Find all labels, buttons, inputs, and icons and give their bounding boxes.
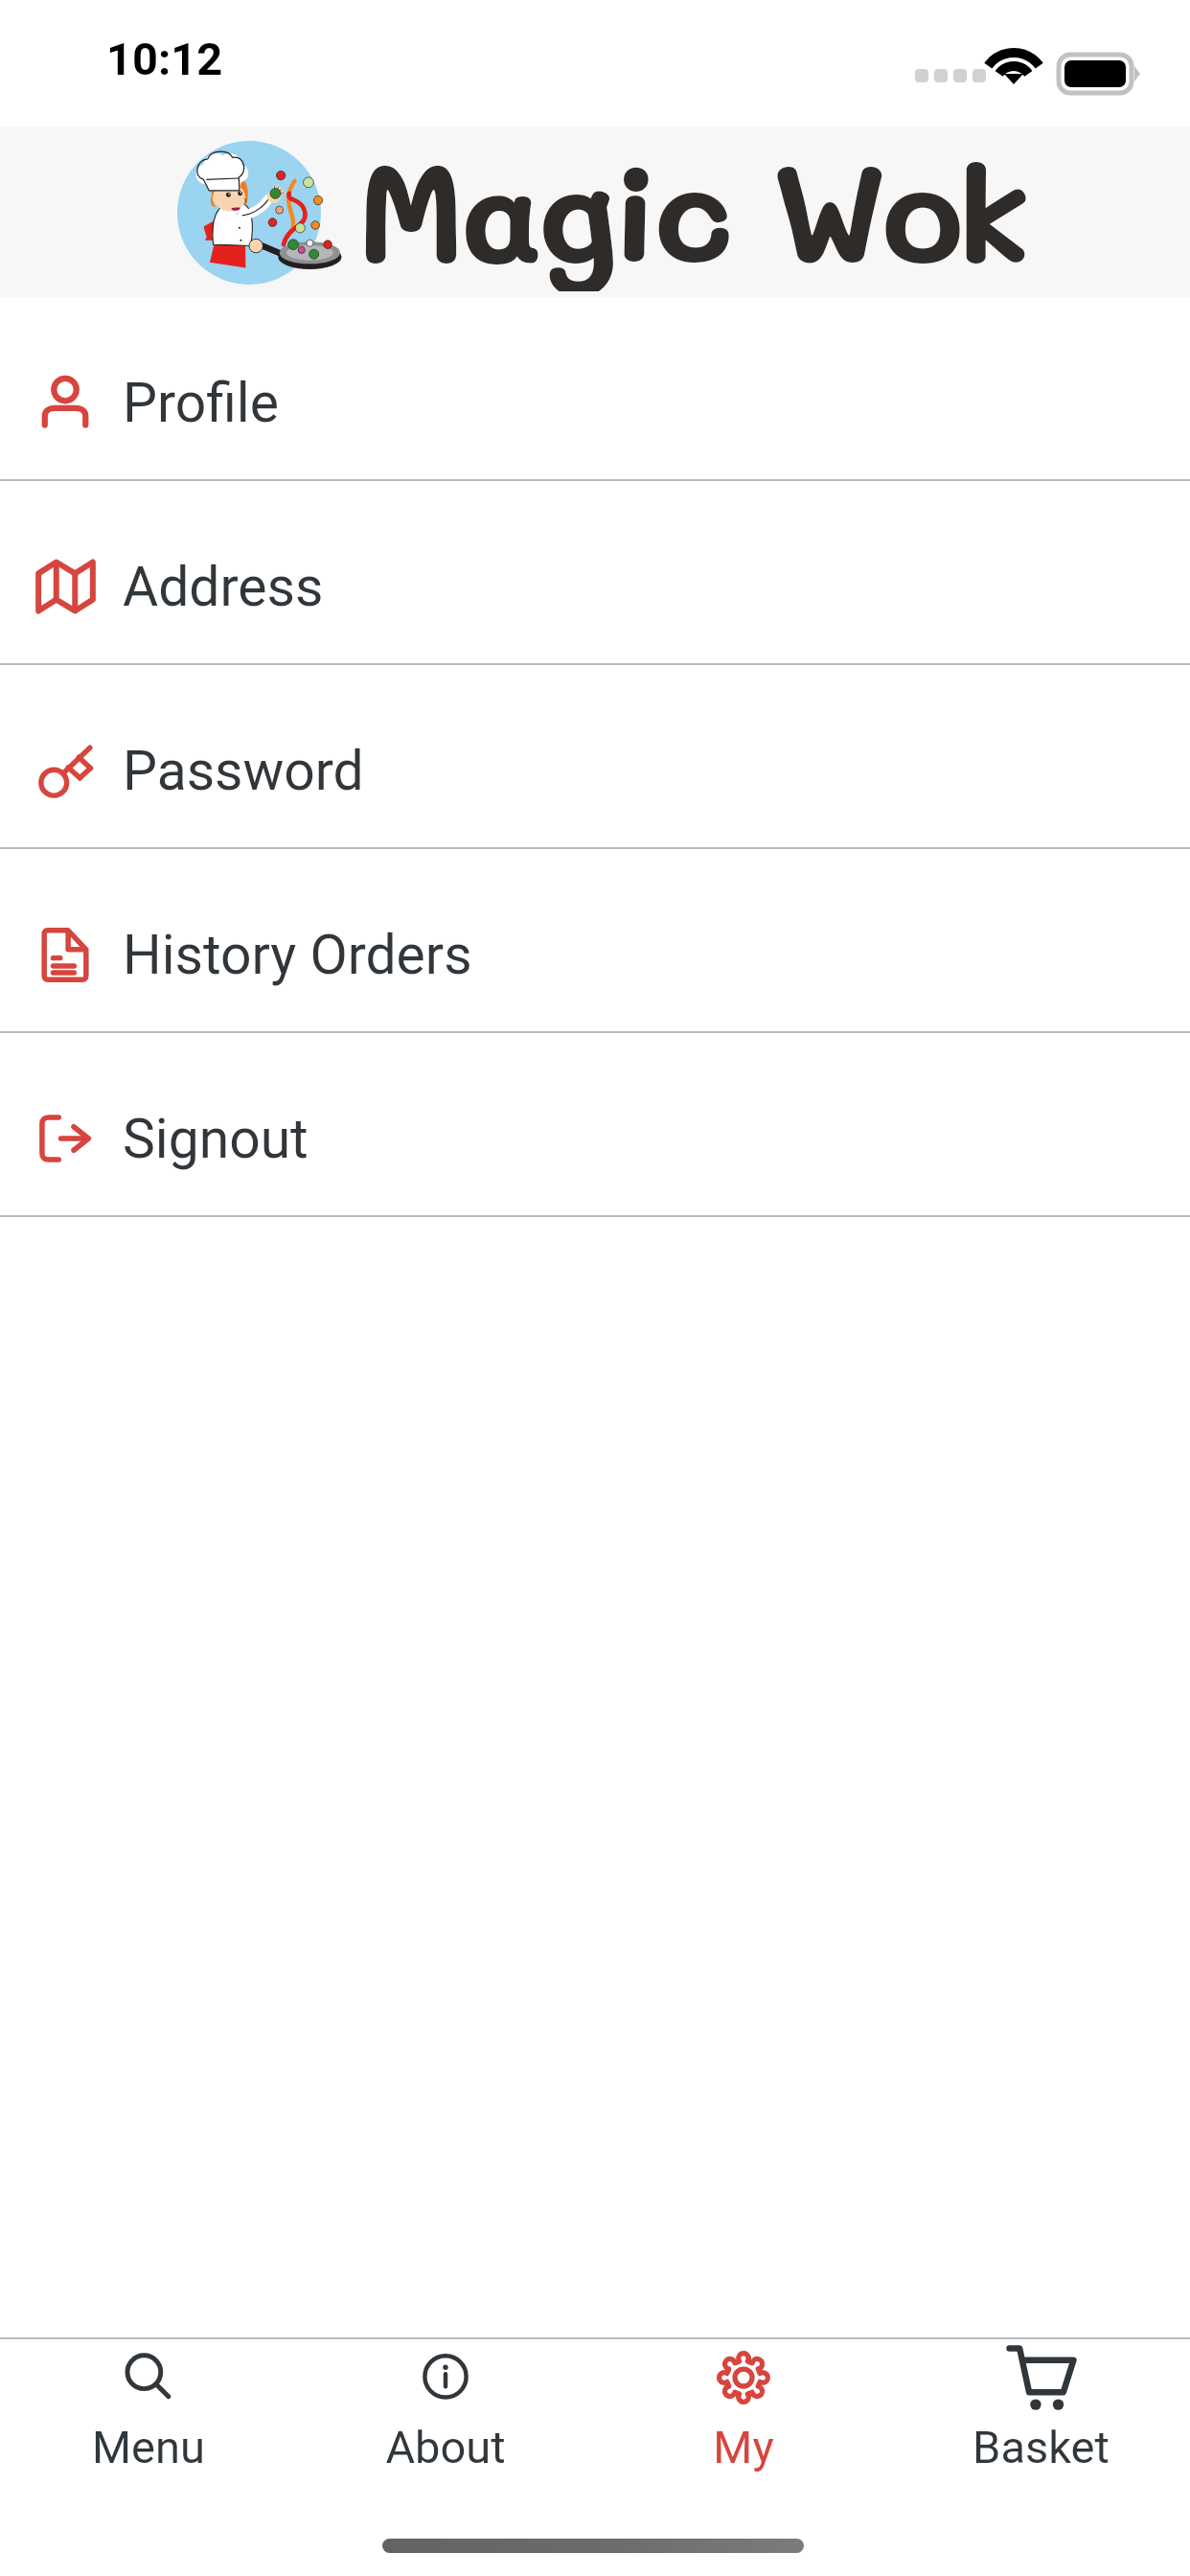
button[interactable]: About <box>297 2339 594 2531</box>
button[interactable]: Profile <box>0 297 1190 479</box>
staticText: About <box>385 2421 506 2473</box>
other: My <box>714 2348 773 2407</box>
button[interactable]: Password <box>0 665 1190 847</box>
other: About <box>420 2352 471 2403</box>
button[interactable]: History Orders <box>0 849 1190 1031</box>
staticText: Menu <box>92 2421 205 2473</box>
staticText: Address <box>123 555 324 619</box>
button[interactable]: Signout <box>0 1033 1190 1215</box>
staticText: Signout <box>123 1107 309 1171</box>
other: Menu <box>121 2350 176 2405</box>
staticText: My <box>713 2421 774 2473</box>
staticText: 10:12 <box>106 33 223 85</box>
staticText: Magic Wok <box>356 121 1026 291</box>
other: Basket <box>1005 2341 1078 2414</box>
staticText: Basket <box>973 2421 1110 2473</box>
staticText: History Orders <box>123 923 472 987</box>
staticText: Profile <box>123 371 279 435</box>
staticText: Password <box>123 739 364 803</box>
button[interactable]: Menu <box>0 2339 297 2531</box>
button[interactable]: My <box>594 2339 892 2531</box>
button[interactable]: Basket <box>892 2339 1190 2531</box>
button[interactable]: Address <box>0 481 1190 663</box>
